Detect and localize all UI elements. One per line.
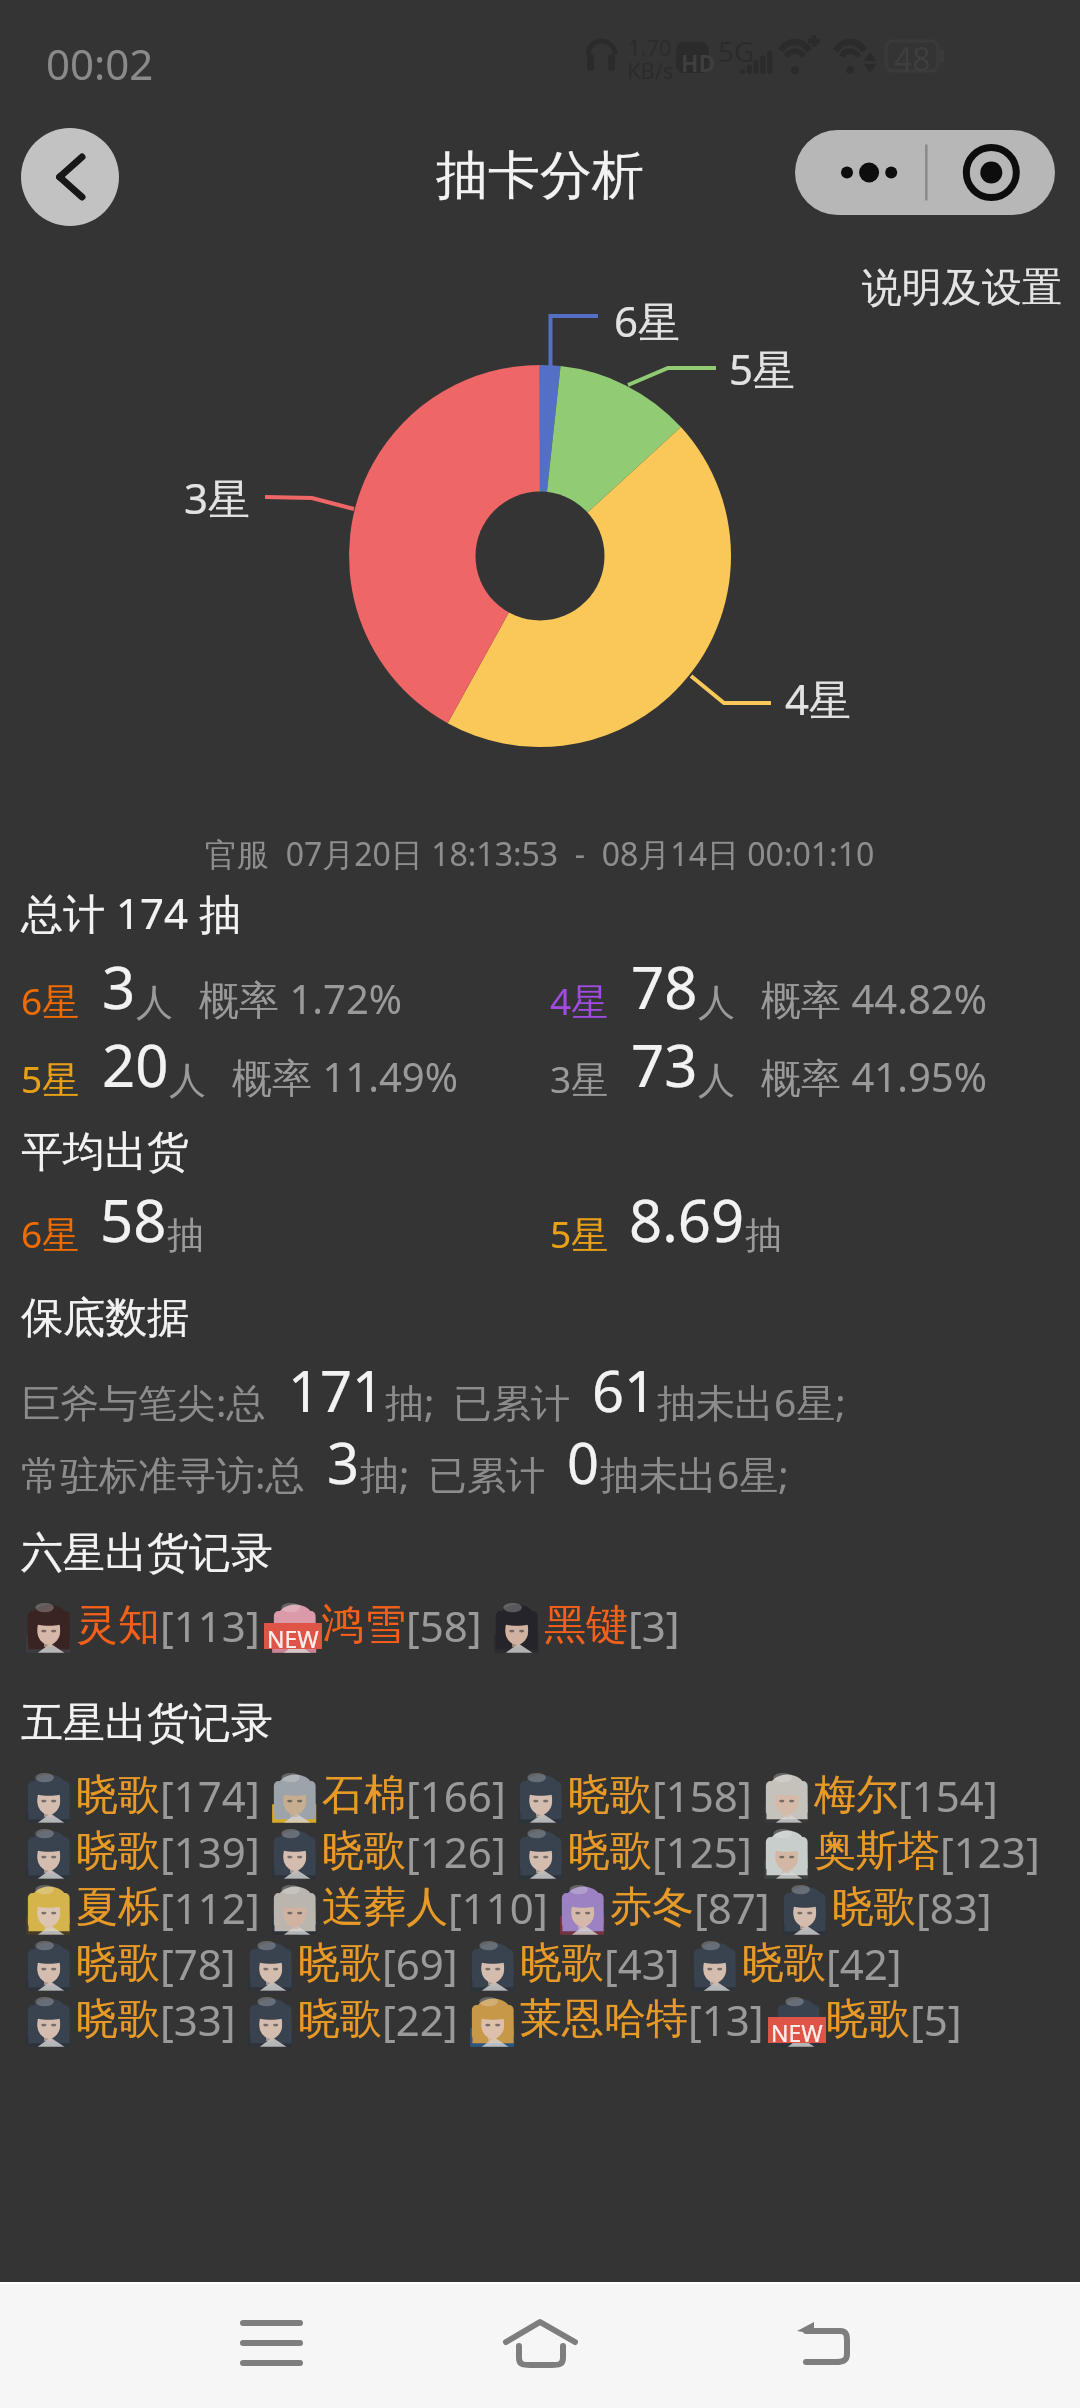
staticText: [174] [160, 1767, 260, 1824]
button[interactable]: 晓歌 [240, 1990, 458, 2048]
staticText: 抽卡分析 [436, 143, 644, 209]
staticText: 78 [631, 947, 698, 1026]
staticText: 00:02 [46, 35, 154, 92]
staticText: [69] [382, 1935, 458, 1992]
button[interactable]: 晓歌 [240, 1934, 458, 1992]
staticText: 晓歌 [832, 1881, 916, 1934]
staticText: 5G [718, 32, 755, 70]
staticText: 晓歌 [520, 1937, 604, 1990]
button[interactable]: 5星 [550, 1180, 782, 1259]
staticText: [22] [382, 1991, 458, 2048]
button[interactable]: 晓歌 [462, 1934, 680, 1992]
staticText: 抽; [360, 1447, 410, 1500]
staticText: 晓歌 [742, 1937, 826, 1990]
staticText: 20 [102, 1025, 169, 1104]
staticText: 巨斧与笔尖:总 [21, 1375, 266, 1428]
staticText: 3 [327, 1424, 360, 1500]
staticText: 概率 41.95% [761, 1049, 987, 1104]
button[interactable]: 4星 [550, 947, 987, 1026]
staticText: [58] [406, 1597, 482, 1654]
button[interactable]: 灵知 [18, 1596, 260, 1654]
staticText: [43] [604, 1935, 680, 1992]
button[interactable]: 送葬人 [264, 1878, 548, 1936]
staticText: KB/s [627, 55, 674, 85]
button[interactable]: Home [480, 2295, 600, 2395]
staticText: [154] [898, 1767, 998, 1824]
staticText: 说明及设置 [862, 262, 1062, 312]
staticText: 晓歌 [76, 1769, 160, 1822]
staticText: [126] [406, 1823, 506, 1880]
staticText: 61 [592, 1352, 657, 1428]
staticText: 官服 07月20日 18:13:53 - 08月14日 00:01:10 [205, 832, 875, 876]
staticText: 梅尔 [814, 1769, 898, 1822]
button[interactable]: 晓歌 [264, 1822, 506, 1880]
staticText: 晓歌 [298, 1937, 382, 1990]
staticText: [3] [628, 1597, 680, 1654]
button[interactable]: Recent apps [211, 2295, 331, 2395]
staticText: 3星 [550, 1053, 609, 1104]
button[interactable]: 晓歌 [18, 1990, 236, 2048]
staticText: 概率 1.72% [199, 971, 402, 1026]
staticText: 已累计 [428, 1451, 545, 1500]
staticText: 六星出货记录 [21, 1527, 273, 1580]
button[interactable]: 3星 [550, 1025, 987, 1104]
staticText: 6星 [21, 1208, 80, 1259]
button[interactable]: 晓歌 [18, 1934, 236, 1992]
staticText: 送葬人 [322, 1881, 448, 1934]
button[interactable]: 晓歌 [684, 1934, 902, 1992]
staticText: 已累计 [453, 1379, 570, 1428]
staticText: [83] [916, 1879, 992, 1936]
button[interactable]: 夏栎 [18, 1878, 260, 1936]
button[interactable]: 6星 [21, 947, 402, 1026]
staticText: 概率 44.82% [761, 971, 987, 1026]
button[interactable]: 6星 [21, 1180, 204, 1259]
staticText: 8.69 [629, 1180, 745, 1259]
staticText: 6星 [614, 292, 681, 349]
staticText: 晓歌 [826, 1993, 910, 2046]
staticText: 晓歌 [76, 1993, 160, 2046]
staticText: [5] [910, 1991, 962, 2048]
staticText: 0 [567, 1424, 600, 1500]
staticText: 石棉 [322, 1769, 406, 1822]
staticText: 3星 [184, 469, 251, 526]
button[interactable]: Back [21, 128, 119, 226]
button[interactable]: 晓歌 [774, 1878, 992, 1936]
staticText: 赤冬 [610, 1881, 694, 1934]
staticText: 4星 [785, 670, 852, 727]
staticText: 晓歌 [76, 1825, 160, 1878]
staticText: [13] [688, 1991, 764, 2048]
button[interactable]: 说明及设置 [858, 262, 1066, 312]
button[interactable]: More options [795, 130, 1055, 215]
button[interactable]: 奥斯塔 [756, 1822, 1040, 1880]
button[interactable]: NEW [768, 1990, 962, 2048]
staticText: 抽 [745, 1212, 782, 1259]
staticText: 奥斯塔 [814, 1825, 940, 1878]
staticText: 晓歌 [298, 1993, 382, 2046]
staticText: 夏栎 [76, 1881, 160, 1934]
staticText: 5星 [729, 340, 796, 397]
button[interactable]: 晓歌 [510, 1822, 752, 1880]
staticText: 晓歌 [568, 1825, 652, 1878]
button[interactable]: 梅尔 [756, 1766, 998, 1824]
staticText: 171 [288, 1352, 385, 1428]
staticText: NEW [771, 2017, 823, 2043]
button[interactable]: 5星 [21, 1025, 458, 1104]
button[interactable]: 晓歌 [18, 1822, 260, 1880]
button[interactable]: 晓歌 [18, 1766, 260, 1824]
staticText: [125] [652, 1823, 752, 1880]
button[interactable]: 赤冬 [552, 1878, 770, 1936]
staticText: 人 [136, 979, 173, 1026]
button[interactable]: 晓歌 [510, 1766, 752, 1824]
staticText: 概率 11.49% [232, 1049, 458, 1104]
button[interactable]: 莱恩哈特 [462, 1990, 764, 2048]
button[interactable]: 石棉 [264, 1766, 506, 1824]
button[interactable]: NEW [264, 1596, 482, 1654]
button[interactable]: Back [762, 2295, 882, 2395]
staticText: 抽未出6星; [600, 1447, 789, 1500]
staticText: 抽未出6星; [657, 1375, 846, 1428]
staticText: 人 [169, 1057, 206, 1104]
button[interactable]: 黑键 [486, 1596, 680, 1654]
staticText: 晓歌 [322, 1825, 406, 1878]
staticText: [113] [160, 1597, 260, 1654]
staticText: 5星 [21, 1053, 80, 1104]
